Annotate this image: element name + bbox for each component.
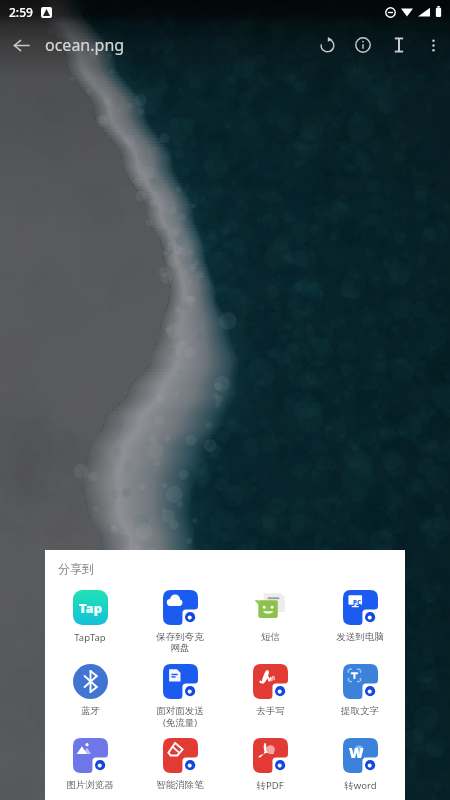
staticText: 智能消除笔	[156, 779, 204, 790]
button[interactable]: 提取文字	[315, 656, 405, 717]
button[interactable]: Info	[345, 27, 381, 63]
staticText: 短信	[261, 631, 280, 643]
button[interactable]: W	[315, 730, 405, 790]
button[interactable]: 智能消除笔	[135, 730, 225, 790]
staticText: 去手写	[256, 705, 285, 717]
staticText: 分享到	[58, 561, 94, 576]
button[interactable]: 转PDF	[225, 730, 315, 790]
button[interactable]: Text	[381, 27, 417, 63]
staticText: 面对面发送 (免流量)	[156, 705, 204, 728]
staticText: W	[349, 743, 364, 762]
button[interactable]: Rotate	[309, 27, 345, 63]
staticText: 转PDF	[256, 779, 284, 790]
staticText: 提取文字	[341, 705, 379, 717]
staticText: PC	[353, 598, 362, 607]
button[interactable]: 保存到夸克 网盘	[135, 582, 225, 654]
button[interactable]: Back	[3, 27, 39, 63]
button[interactable]: 短信	[225, 582, 315, 643]
button[interactable]: 蓝牙	[45, 656, 135, 717]
staticText: 转word	[344, 779, 377, 790]
button[interactable]: 图片浏览器	[45, 730, 135, 790]
button[interactable]: 面对面发送 (免流量)	[135, 656, 225, 728]
staticText: 2:59	[9, 4, 33, 20]
staticText: 发送到电脑	[336, 631, 384, 643]
button[interactable]: Tap	[45, 582, 135, 644]
staticText: 图片浏览器	[66, 779, 114, 790]
staticText: ocean.png	[45, 34, 125, 56]
staticText: Tap	[79, 599, 103, 617]
staticText: 保存到夸克 网盘	[156, 631, 204, 654]
button[interactable]: PC	[315, 582, 405, 643]
staticText: TapTap	[74, 631, 106, 644]
staticText: 蓝牙	[81, 705, 100, 717]
button[interactable]: 去手写	[225, 656, 315, 717]
button[interactable]: More options	[417, 29, 449, 61]
